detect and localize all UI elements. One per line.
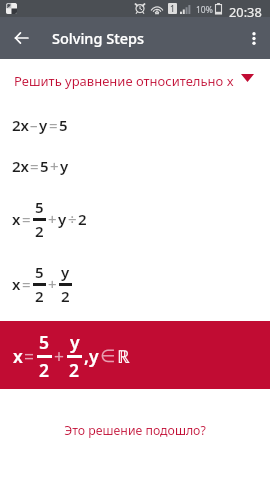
staticText: 2 [61,286,70,306]
staticText: , [84,344,89,368]
button[interactable]: Это решение подошло? [0,412,270,448]
staticText: 5 [35,197,44,217]
staticText: = [49,115,58,135]
staticText: 2 [35,286,44,306]
staticText: 5 [40,156,49,176]
staticText: 1 [170,3,175,14]
staticText: 2 [39,358,50,382]
staticText: – [30,115,38,135]
staticText: x [12,274,21,294]
staticText: 2x [12,156,29,176]
button[interactable]: x [0,321,270,389]
staticText: 10% [196,4,213,16]
staticText: ÷ [68,209,77,229]
staticText: = [22,274,31,294]
staticText: y [61,262,70,282]
staticText: + [48,209,57,229]
staticText: 5 [39,330,50,354]
staticText: 5 [59,115,68,135]
staticText: y [60,156,69,176]
staticText: y [70,330,80,354]
staticText: + [54,344,65,368]
staticText: = [24,344,35,368]
staticText: 2 [35,221,44,241]
button[interactable]: More options [233,17,270,59]
staticText: + [50,156,59,176]
staticText: ∈ [100,346,116,366]
staticText: = [22,209,31,229]
staticText: Это решение подошло? [64,422,206,439]
staticText: 20:38 [229,3,262,20]
button[interactable]: Решить уравнение относительно x [0,59,270,95]
staticText: + [48,274,57,294]
staticText: 5 [35,262,44,282]
staticText: y [39,115,48,135]
staticText: y [89,344,99,368]
staticText: y [58,209,67,229]
staticText: 2 [69,358,80,382]
staticText: x [12,209,21,229]
staticText: 2 [78,209,87,229]
button[interactable]: Back [0,17,42,59]
staticText: Solving Steps [52,28,145,48]
staticText: = [30,156,39,176]
staticText: ℝ [117,344,130,368]
staticText: Решить уравнение относительно x [14,72,234,90]
staticText: x [13,344,23,368]
staticText: 2x [12,115,29,135]
